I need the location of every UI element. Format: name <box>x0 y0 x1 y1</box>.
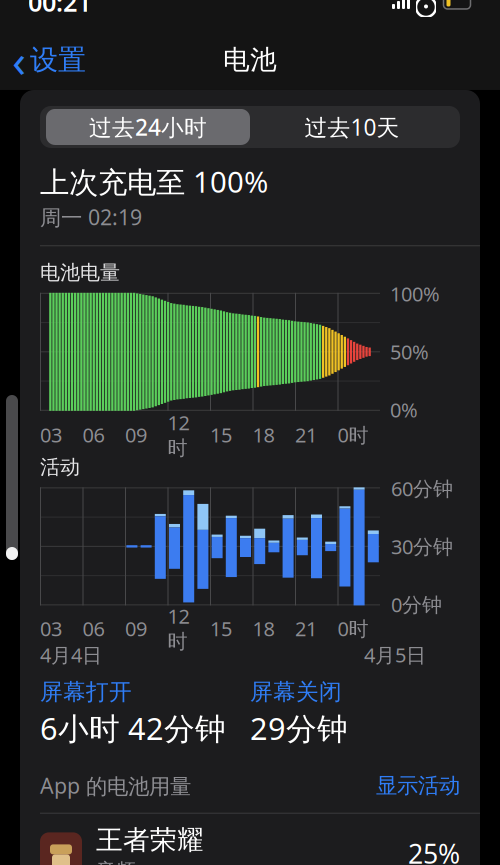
staticText: 30分钟 <box>391 533 453 560</box>
staticText: 显示活动 <box>376 772 460 799</box>
button[interactable]: 过去24小时 <box>46 109 250 145</box>
staticText: 60分钟 <box>391 475 453 502</box>
staticText: 周一 02:19 <box>40 203 142 231</box>
staticText: 上次充电至 100% <box>40 162 268 201</box>
staticText: 12时 <box>167 409 189 460</box>
staticText: 03 <box>40 421 62 448</box>
staticText: 屏幕打开 <box>40 678 132 706</box>
staticText: 100% <box>390 280 440 307</box>
staticText: 音频 <box>96 858 136 865</box>
staticText: 00:21 <box>28 0 91 19</box>
staticText: 18 <box>252 421 274 448</box>
staticText: 0时 <box>337 421 368 448</box>
button[interactable]: 王者荣耀 <box>20 814 480 865</box>
staticText: 0分钟 <box>391 591 442 618</box>
staticText: 活动 <box>40 455 80 479</box>
staticText: 屏幕关闭 <box>250 678 342 706</box>
staticText: 21 <box>295 615 317 642</box>
staticText: 15 <box>210 421 232 448</box>
staticText: 12时 <box>167 603 189 654</box>
staticText: 18 <box>252 615 274 642</box>
staticText: 09 <box>125 615 147 642</box>
staticText: ‹ <box>12 30 26 90</box>
staticText: 21 <box>295 421 317 448</box>
button[interactable]: ‹ <box>0 26 98 94</box>
staticText: 设置 <box>30 43 86 77</box>
staticText: App 的电池用量 <box>40 771 191 800</box>
staticText: 电池电量 <box>40 260 120 285</box>
staticText: 4月5日 <box>364 641 426 668</box>
button[interactable]: 显示活动 <box>376 768 460 803</box>
staticText: 09 <box>125 421 147 448</box>
staticText: 过去24小时 <box>89 112 207 142</box>
staticText: 过去10天 <box>304 112 399 142</box>
staticText: 06 <box>82 421 104 448</box>
button[interactable]: 过去10天 <box>250 109 454 145</box>
staticText: 0时 <box>337 615 368 642</box>
staticText: 15 <box>210 615 232 642</box>
staticText: 4月4日 <box>40 641 102 668</box>
staticText: 29分钟 <box>250 708 348 748</box>
staticText: 电池 <box>223 44 277 76</box>
staticText: 6小时 42分钟 <box>40 708 226 748</box>
staticText: 03 <box>40 615 62 642</box>
staticText: 王者荣耀 <box>96 824 204 856</box>
staticText: 25% <box>408 836 460 865</box>
staticText: 06 <box>82 615 104 642</box>
staticText: 50% <box>390 338 429 365</box>
staticText: 0% <box>390 396 418 423</box>
